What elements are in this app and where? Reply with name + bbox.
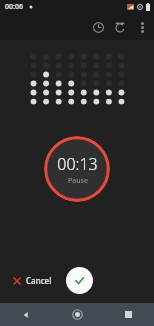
button[interactable]: More options [131, 16, 153, 38]
button[interactable]: Reset timer [109, 16, 131, 38]
staticText: 00:13 [57, 153, 98, 175]
button[interactable]: Recent apps [103, 303, 154, 326]
button[interactable]: 00:13 [44, 136, 110, 202]
button[interactable]: Confirm [66, 267, 93, 294]
button[interactable]: Back [0, 303, 52, 326]
button[interactable]: Cancel [10, 271, 55, 290]
staticText: Cancel [26, 275, 52, 286]
button[interactable]: Timer history [87, 16, 109, 38]
button[interactable]: Home [52, 303, 103, 326]
staticText: Pause [68, 176, 88, 186]
staticText: 00:06 [5, 2, 23, 12]
